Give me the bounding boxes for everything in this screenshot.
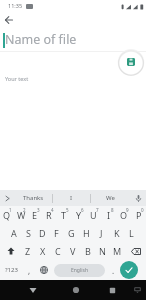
- staticText: 9: [126, 207, 129, 213]
- staticText: N: [99, 245, 106, 257]
- staticText: ?123: [5, 266, 18, 274]
- button[interactable]: I: [53, 190, 90, 206]
- button[interactable]: T: [56, 206, 71, 224]
- button[interactable]: L: [124, 224, 139, 242]
- staticText: V: [70, 245, 76, 257]
- button[interactable]: We: [91, 190, 130, 206]
- staticText: 7: [96, 207, 99, 213]
- staticText: 4: [51, 207, 54, 213]
- button[interactable]: [104, 282, 120, 298]
- staticText: 5: [66, 207, 69, 213]
- button[interactable]: [130, 190, 146, 206]
- button[interactable]: ,: [22, 260, 36, 280]
- staticText: H: [83, 227, 90, 239]
- staticText: 11:35: [8, 2, 23, 9]
- button[interactable]: Q: [0, 206, 14, 224]
- button[interactable]: [68, 282, 84, 298]
- staticText: W: [17, 209, 26, 221]
- button[interactable]: [0, 190, 14, 206]
- button[interactable]: [131, 283, 144, 296]
- staticText: E: [32, 209, 38, 221]
- staticText: J: [100, 227, 103, 239]
- staticText: T: [61, 209, 67, 221]
- button[interactable]: [125, 242, 146, 260]
- staticText: B: [85, 245, 91, 257]
- staticText: D: [39, 227, 46, 239]
- button[interactable]: E: [28, 206, 42, 224]
- button[interactable]: ?123: [0, 260, 22, 280]
- button[interactable]: V: [65, 242, 80, 260]
- button[interactable]: I: [101, 206, 116, 224]
- button[interactable]: P: [131, 206, 146, 224]
- staticText: C: [55, 245, 61, 257]
- staticText: We: [106, 194, 115, 202]
- button[interactable]: [120, 260, 146, 280]
- button[interactable]: [2, 13, 16, 27]
- staticText: G: [68, 227, 75, 239]
- button[interactable]: W: [14, 206, 28, 224]
- staticText: F: [54, 227, 59, 239]
- button[interactable]: J: [94, 224, 109, 242]
- button[interactable]: [118, 49, 144, 75]
- staticText: 0: [141, 207, 144, 213]
- button[interactable]: D: [35, 224, 49, 242]
- button[interactable]: .: [107, 260, 120, 280]
- staticText: 1: [9, 207, 12, 213]
- button[interactable]: M: [110, 242, 125, 260]
- button[interactable]: R: [42, 206, 56, 224]
- button[interactable]: F: [49, 224, 64, 242]
- button[interactable]: N: [95, 242, 110, 260]
- staticText: ,: [28, 265, 31, 276]
- staticText: 8: [111, 207, 114, 213]
- staticText: Thanks: [23, 194, 44, 202]
- staticText: Your text: [5, 75, 29, 82]
- staticText: K: [114, 227, 120, 239]
- staticText: 3: [37, 207, 40, 213]
- staticText: English: [71, 267, 89, 274]
- button[interactable]: X: [35, 242, 50, 260]
- button[interactable]: Name of file: [5, 31, 77, 48]
- staticText: I: [107, 209, 111, 221]
- button[interactable]: English: [54, 260, 105, 280]
- staticText: L: [129, 227, 134, 239]
- button[interactable]: H: [79, 224, 94, 242]
- button[interactable]: Z: [21, 242, 35, 260]
- button[interactable]: [0, 242, 21, 260]
- button[interactable]: Thanks: [14, 190, 52, 206]
- staticText: I: [70, 194, 73, 202]
- staticText: Name of file: [5, 31, 77, 48]
- button[interactable]: S: [21, 224, 35, 242]
- button[interactable]: B: [80, 242, 95, 260]
- staticText: R: [46, 209, 52, 221]
- staticText: M: [113, 245, 122, 257]
- button[interactable]: U: [86, 206, 101, 224]
- button[interactable]: C: [50, 242, 65, 260]
- staticText: .: [112, 265, 115, 276]
- button[interactable]: G: [64, 224, 79, 242]
- staticText: X: [40, 245, 46, 257]
- staticText: Q: [3, 209, 11, 221]
- staticText: A: [11, 227, 17, 239]
- staticText: O: [120, 209, 128, 221]
- button[interactable]: [25, 282, 41, 298]
- button[interactable]: K: [109, 224, 124, 242]
- button[interactable]: A: [7, 224, 21, 242]
- staticText: P: [136, 209, 142, 221]
- button[interactable]: [36, 260, 52, 280]
- staticText: Y: [76, 209, 82, 221]
- staticText: 2: [23, 207, 26, 213]
- staticText: U: [90, 209, 97, 221]
- staticText: Z: [25, 245, 31, 257]
- staticText: 6: [81, 207, 84, 213]
- button[interactable]: Y: [71, 206, 86, 224]
- button[interactable]: Your text: [5, 75, 29, 82]
- staticText: S: [26, 227, 31, 239]
- button[interactable]: O: [116, 206, 131, 224]
